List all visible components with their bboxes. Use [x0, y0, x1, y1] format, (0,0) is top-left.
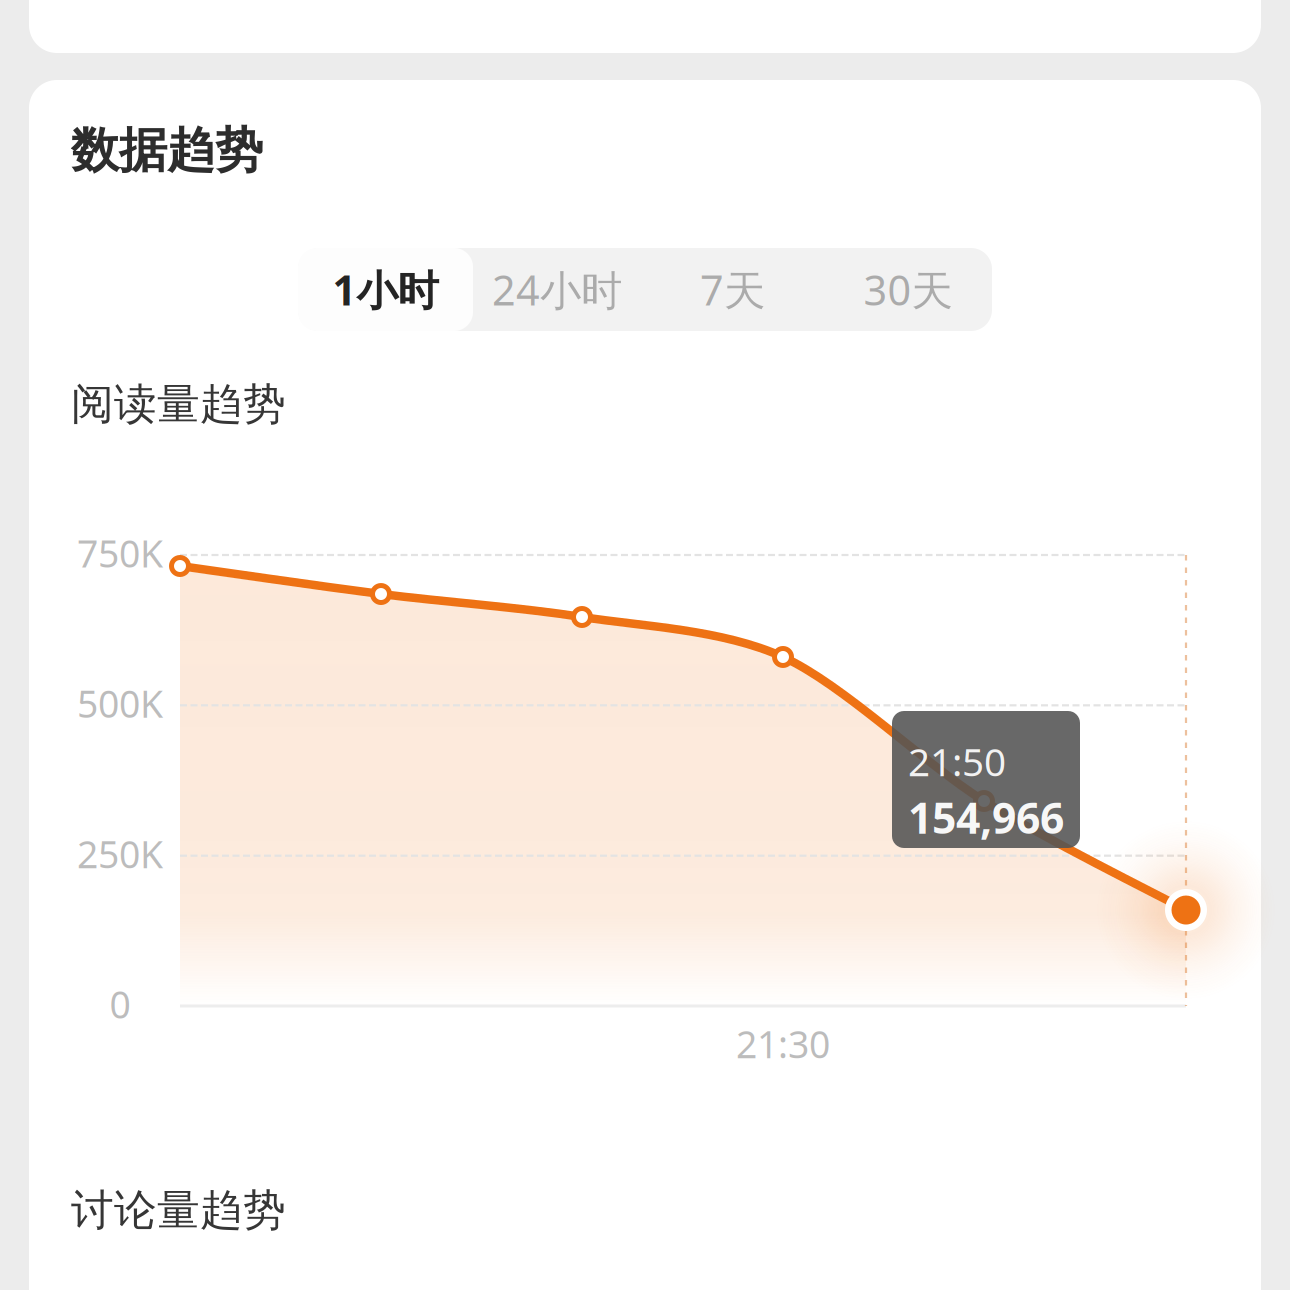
staticText: 250K: [77, 829, 163, 878]
staticText: 750K: [77, 528, 163, 578]
button[interactable]: 24小时: [473, 248, 641, 331]
staticText: 7天: [700, 262, 765, 317]
staticText: 1小时: [332, 262, 438, 317]
staticText: 数据趋势: [71, 121, 263, 180]
staticText: 30天: [863, 262, 952, 317]
staticText: 阅读量趋势: [71, 378, 286, 430]
staticText: 154,966: [908, 789, 1064, 845]
staticText: 0: [109, 979, 130, 1029]
button[interactable]: 30天: [824, 248, 992, 331]
staticText: 500K: [77, 678, 163, 728]
staticText: 讨论量趋势: [71, 1184, 286, 1236]
staticText: 21:50: [908, 735, 1006, 787]
staticText: 24小时: [492, 262, 622, 317]
staticText: 21:30: [736, 1019, 830, 1069]
button[interactable]: 7天: [641, 248, 824, 331]
button[interactable]: 1小时: [298, 248, 473, 331]
